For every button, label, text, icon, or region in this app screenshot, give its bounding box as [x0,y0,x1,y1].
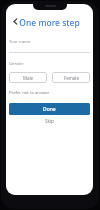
button[interactable]: Prefer not to answer [9,90,50,96]
button[interactable]: Back [8,14,22,28]
staticText: Male [23,75,34,81]
button[interactable]: Skip [9,118,90,124]
staticText: Done [43,106,56,113]
staticText: One more step [6,17,93,29]
button[interactable]: Female [52,72,90,83]
button[interactable]: Male [9,72,47,83]
staticText: Female [64,75,79,81]
staticText: Prefer not to answer [9,90,50,96]
staticText: Skip [45,118,54,124]
button[interactable]: Done [9,103,90,115]
staticText: Your name [9,39,31,45]
staticText: Gender [9,61,24,67]
